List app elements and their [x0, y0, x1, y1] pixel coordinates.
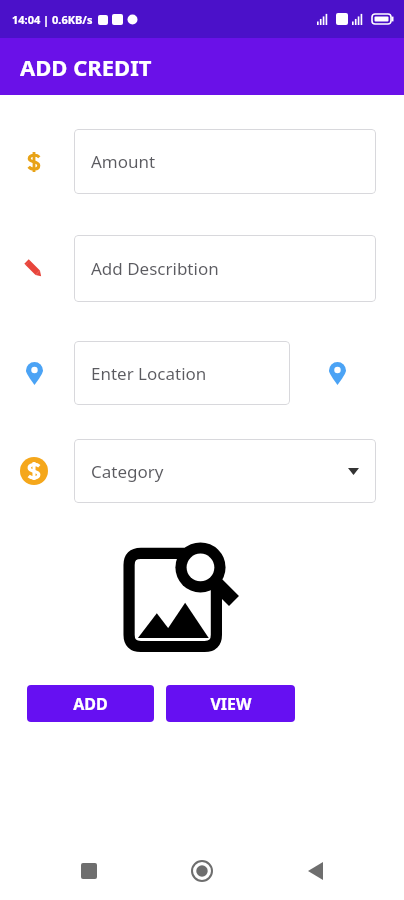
staticText: VIEW [210, 693, 252, 715]
staticText: Amount [91, 150, 156, 173]
button[interactable]: Home [178, 847, 226, 895]
other: Location [22, 361, 46, 385]
button[interactable]: Add Describtion [74, 235, 376, 302]
staticText: Enter Location [91, 362, 207, 385]
button[interactable]: Category [74, 439, 376, 503]
button[interactable]: Pick image [122, 535, 240, 653]
button[interactable]: VIEW [166, 685, 295, 722]
button[interactable]: ADD [27, 685, 154, 722]
button[interactable]: Amount [74, 129, 376, 194]
staticText: 14:04 | 0.6KB/s [12, 12, 93, 27]
button[interactable]: Back [291, 847, 339, 895]
button[interactable]: Pick location on map [325, 361, 349, 385]
staticText: Add Describtion [91, 257, 219, 280]
staticText: ADD [73, 693, 108, 715]
staticText: ADD CREDIT [20, 52, 152, 82]
staticText: Category [91, 460, 164, 483]
button[interactable]: Enter Location [74, 341, 290, 405]
button[interactable]: Recent apps [65, 847, 113, 895]
